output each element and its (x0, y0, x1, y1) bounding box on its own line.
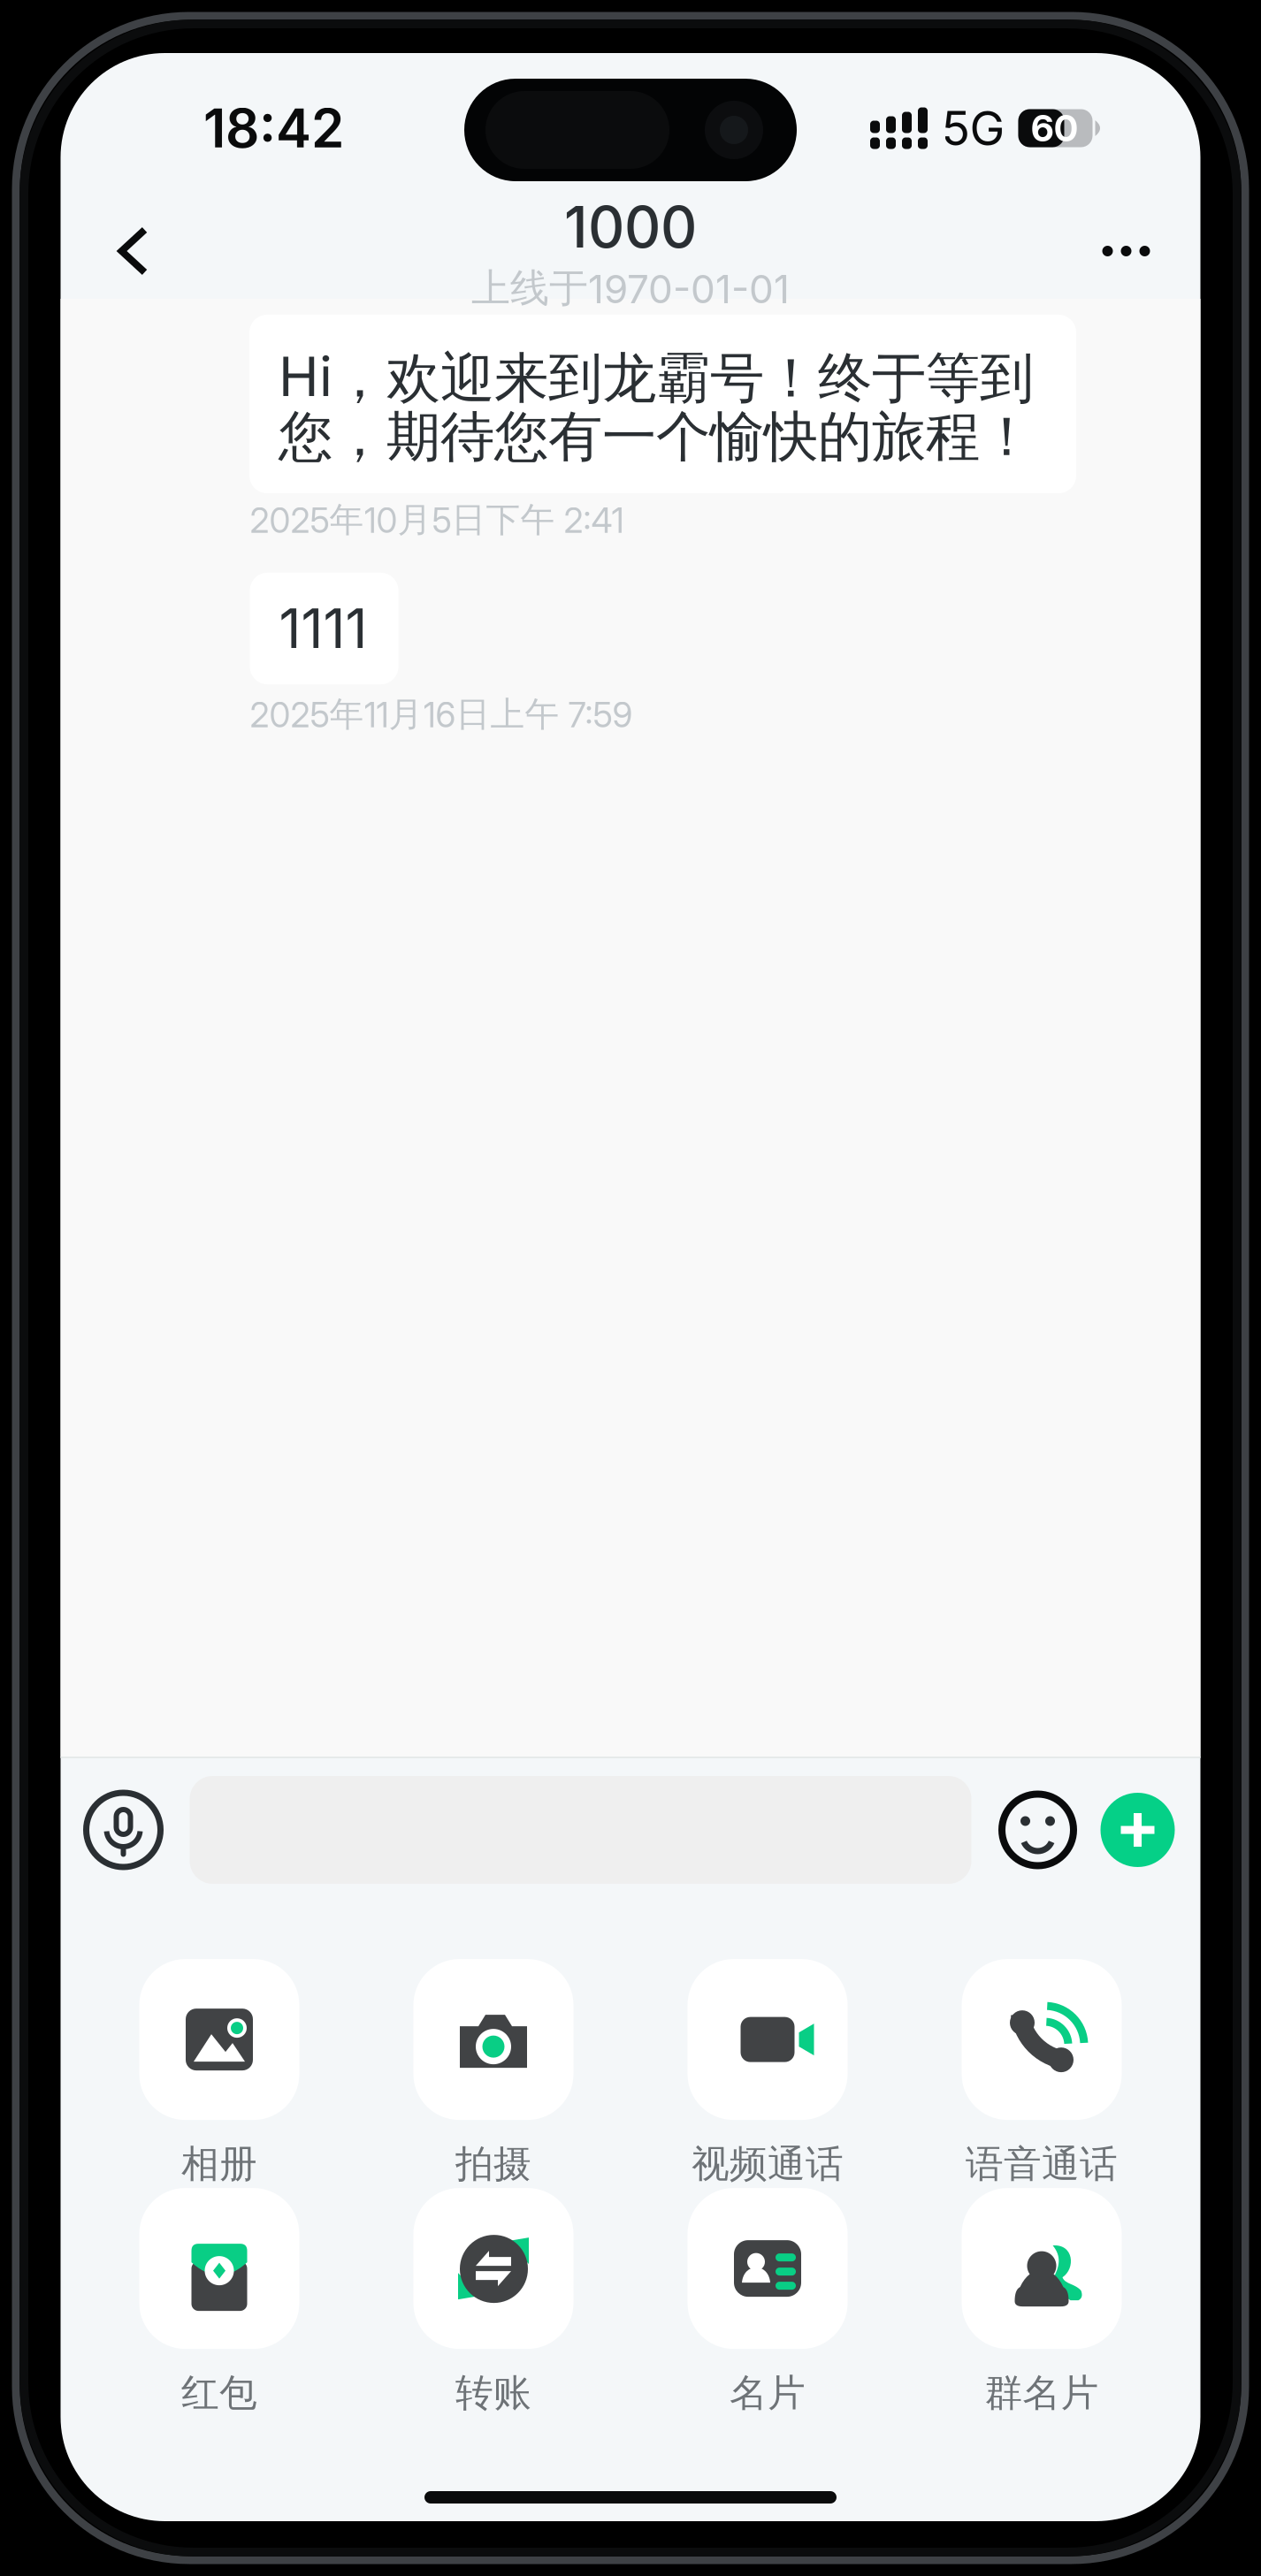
staticText: 1000 (564, 193, 697, 261)
button[interactable]: 转账 (356, 2191, 630, 2414)
button[interactable]: 相册 (82, 1962, 356, 2185)
staticText: 转账 (455, 2369, 531, 2417)
staticText: Hi，欢迎来到龙霸号！终于等到您，期待您有一个愉快的旅程！ (279, 344, 1034, 471)
staticText: 相册 (181, 2140, 257, 2188)
staticText: 群名片 (985, 2369, 1099, 2417)
staticText: 语音通话 (966, 2140, 1118, 2188)
staticText: 2025年10月5日下午 2:41 (250, 498, 624, 541)
staticText: 红包 (181, 2369, 257, 2417)
staticText: 60 (1031, 106, 1078, 150)
button[interactable]: More actions (1088, 1780, 1187, 1879)
staticText: 2025年11月16日上午 7:59 (250, 693, 633, 736)
button[interactable]: 群名片 (905, 2191, 1179, 2414)
staticText: 上线于1970-01-01 (471, 264, 790, 313)
staticText: 拍摄 (455, 2140, 531, 2188)
button[interactable]: More options (1077, 202, 1176, 301)
button[interactable]: Emoji (988, 1780, 1087, 1879)
staticText: 18:42 (203, 96, 344, 160)
button[interactable]: 拍摄 (356, 1962, 630, 2185)
staticText: 名片 (730, 2369, 806, 2417)
button[interactable]: 语音通话 (905, 1962, 1179, 2185)
staticText: 视频通话 (692, 2140, 844, 2188)
button[interactable]: 视频通话 (630, 1962, 905, 2185)
button[interactable]: Voice message (71, 1778, 176, 1882)
staticText: 1111 (279, 596, 367, 661)
staticText: 5G (941, 100, 1005, 157)
button[interactable]: Back (84, 202, 183, 301)
button[interactable]: 名片 (630, 2191, 905, 2414)
button[interactable]: 红包 (82, 2191, 356, 2414)
